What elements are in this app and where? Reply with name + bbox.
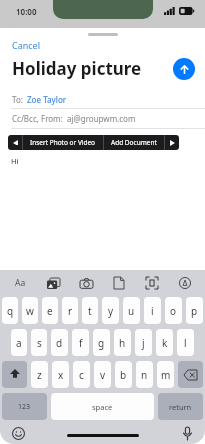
button[interactable]: j: [135, 329, 152, 356]
button[interactable]: d: [51, 329, 68, 356]
button[interactable]: Add Document: [104, 135, 164, 150]
button[interactable]: return: [158, 393, 203, 420]
button[interactable]: Backspace: [178, 361, 203, 388]
staticText: return: [169, 402, 192, 412]
button[interactable]: k: [156, 329, 173, 356]
button[interactable]: i: [144, 297, 161, 324]
staticText: Cancel: [12, 39, 41, 51]
button[interactable]: p: [186, 297, 203, 324]
button[interactable]: w: [22, 297, 38, 324]
button[interactable]: b: [115, 361, 132, 388]
staticText: p: [191, 304, 198, 318]
staticText: h: [119, 336, 126, 350]
staticText: g: [98, 336, 105, 350]
staticText: s: [37, 336, 42, 350]
button[interactable]: a: [11, 329, 27, 356]
button[interactable]: u: [123, 297, 140, 324]
button[interactable]: n: [136, 361, 153, 388]
button[interactable]: m: [157, 361, 174, 388]
button[interactable]: Previous: [8, 135, 22, 150]
button[interactable]: Photos: [43, 273, 63, 293]
staticText: k: [162, 336, 168, 350]
staticText: u: [128, 304, 135, 318]
staticText: a: [16, 336, 22, 350]
button[interactable]: Emoji: [9, 424, 27, 442]
button[interactable]: h: [114, 329, 131, 356]
button[interactable]: q: [2, 297, 18, 324]
button[interactable]: Shift: [2, 361, 27, 388]
button[interactable]: Document: [109, 273, 129, 293]
button[interactable]: Format: [10, 273, 30, 293]
button[interactable]: y: [102, 297, 119, 324]
button[interactable]: Send: [173, 58, 195, 80]
staticText: t: [88, 304, 92, 318]
button[interactable]: x: [52, 361, 69, 388]
button[interactable]: Insert Photo or Video: [23, 135, 103, 150]
staticText: Insert Photo or Video: [30, 138, 96, 147]
button[interactable]: s: [31, 329, 47, 356]
button[interactable]: f: [72, 329, 89, 356]
staticText: f: [79, 336, 83, 350]
staticText: Add Document: [111, 138, 157, 147]
staticText: o: [170, 304, 177, 318]
button[interactable]: Cancel: [10, 38, 43, 52]
staticText: 10:00: [16, 6, 37, 17]
staticText: b: [120, 368, 127, 382]
staticText: q: [7, 304, 14, 318]
staticText: z: [37, 368, 42, 382]
staticText: l: [184, 336, 187, 350]
button[interactable]: t: [82, 297, 98, 324]
button[interactable]: r: [62, 297, 78, 324]
staticText: v: [100, 368, 106, 382]
button[interactable]: l: [177, 329, 194, 356]
button[interactable]: v: [94, 361, 111, 388]
button[interactable]: To:: [0, 90, 205, 108]
staticText: Aa: [15, 277, 26, 289]
button[interactable]: Scan: [142, 273, 162, 293]
staticText: To:: [12, 94, 23, 105]
staticText: c: [79, 368, 84, 382]
button[interactable]: Markup: [175, 273, 195, 293]
button[interactable]: g: [93, 329, 110, 356]
staticText: j: [142, 336, 145, 350]
staticText: Zoe Taylor: [27, 94, 67, 105]
staticText: Cc/Bcc, From:: [12, 113, 63, 124]
button[interactable]: e: [42, 297, 58, 324]
button[interactable]: 123: [2, 393, 47, 420]
button[interactable]: Camera: [76, 273, 96, 293]
staticText: y: [108, 304, 114, 318]
staticText: e: [47, 304, 53, 318]
button[interactable]: z: [31, 361, 48, 388]
staticText: m: [161, 368, 171, 382]
staticText: n: [141, 368, 148, 382]
staticText: Hi: [11, 156, 19, 166]
button[interactable]: Next: [165, 135, 179, 150]
staticText: space: [92, 402, 113, 412]
button[interactable]: Dictation: [178, 424, 196, 442]
button[interactable]: o: [165, 297, 182, 324]
button[interactable]: space: [51, 393, 154, 420]
staticText: Holiday picture: [12, 57, 173, 80]
staticText: w: [26, 304, 34, 318]
staticText: d: [56, 336, 63, 350]
staticText: 123: [18, 402, 31, 412]
staticText: x: [58, 368, 64, 382]
staticText: r: [68, 304, 73, 318]
button[interactable]: c: [73, 361, 90, 388]
staticText: i: [151, 304, 154, 318]
button[interactable]: Cc/Bcc, From:: [0, 109, 205, 128]
staticText: aj@groupwm.com: [67, 113, 136, 124]
